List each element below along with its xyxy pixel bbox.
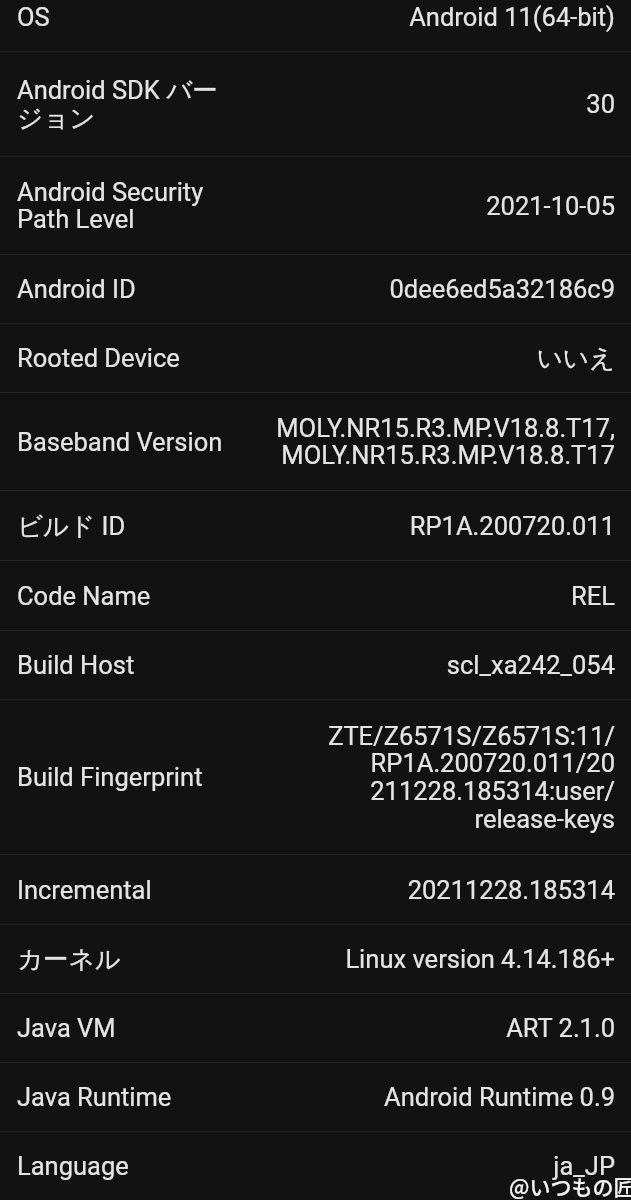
button[interactable]: OS: [0, 0, 631, 51]
staticText: ja_JP: [247, 1151, 615, 1181]
staticText: 20211228.185314: [247, 875, 615, 905]
staticText: Language: [17, 1151, 239, 1181]
button[interactable]: カーネル: [0, 925, 631, 993]
staticText: MOLY.NR15.R3.MP.V18.8.T17, MOLY.NR15.R3.…: [247, 413, 615, 470]
button[interactable]: Android Security Path Level: [0, 157, 631, 254]
button[interactable]: Android ID: [0, 255, 631, 323]
button[interactable]: Build Host: [0, 631, 631, 699]
staticText: Android ID: [17, 274, 239, 304]
staticText: REL: [247, 581, 615, 611]
staticText: Build Host: [17, 650, 239, 680]
staticText: Java VM: [17, 1013, 239, 1043]
button[interactable]: Rooted Device: [0, 324, 631, 392]
staticText: 0dee6ed5a32186c9: [247, 274, 615, 304]
staticText: Build Fingerprint: [17, 762, 239, 792]
button[interactable]: Java VM: [0, 994, 631, 1062]
staticText: Linux version 4.14.186+: [247, 944, 615, 974]
staticText: Code Name: [17, 581, 239, 611]
button[interactable]: Java Runtime: [0, 1063, 631, 1131]
staticText: Android SDK バージョン: [17, 74, 239, 134]
button[interactable]: Baseband Version: [0, 393, 631, 490]
button[interactable]: Incremental: [0, 855, 631, 924]
button[interactable]: Language: [0, 1132, 631, 1200]
staticText: RP1A.200720.011: [247, 511, 615, 541]
staticText: Baseband Version: [17, 427, 239, 457]
staticText: Incremental: [17, 875, 239, 905]
staticText: 30: [247, 89, 615, 119]
button[interactable]: Code Name: [0, 561, 631, 630]
staticText: カーネル: [17, 943, 239, 975]
staticText: Rooted Device: [17, 343, 239, 373]
staticText: @いつもの匠: [509, 1171, 631, 1200]
staticText: scl_xa242_054: [247, 650, 615, 680]
staticText: OS: [17, 2, 239, 32]
staticText: ART 2.1.0: [247, 1013, 615, 1043]
staticText: Android Security Path Level: [17, 177, 239, 234]
staticText: Java Runtime: [17, 1082, 239, 1112]
button[interactable]: Build Fingerprint: [0, 700, 631, 854]
staticText: 2021-10-05: [247, 191, 615, 221]
staticText: Android 11(64-bit): [247, 2, 615, 32]
staticText: いいえ: [247, 342, 615, 374]
button[interactable]: ビルド ID: [0, 491, 631, 560]
staticText: Android Runtime 0.9: [247, 1082, 615, 1112]
staticText: ZTE/Z6571S/Z6571S:11/ RP1A.200720.011/20…: [247, 721, 615, 834]
staticText: ビルド ID: [17, 510, 239, 542]
button[interactable]: Android SDK バージョン: [0, 52, 631, 156]
